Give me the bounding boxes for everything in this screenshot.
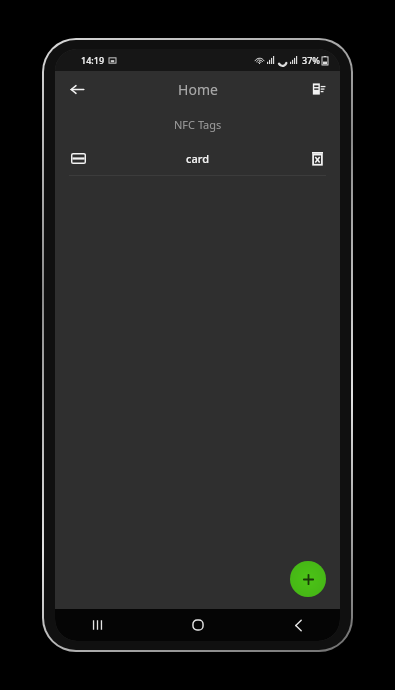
staticText: NFC Tags <box>174 117 222 132</box>
button[interactable]: Card tag <box>65 145 91 171</box>
button[interactable]: Card tag <box>55 141 340 175</box>
button[interactable]: Back <box>61 73 93 105</box>
button[interactable]: Home <box>178 609 218 641</box>
button[interactable]: History <box>304 74 334 104</box>
staticText: Home <box>178 80 218 99</box>
button[interactable]: Back <box>278 609 318 641</box>
staticText: 14:19 <box>81 54 105 66</box>
staticText: 37% <box>302 54 320 66</box>
button[interactable]: Delete <box>304 145 330 171</box>
staticText: card <box>186 151 209 166</box>
button[interactable]: Add tag <box>290 561 326 597</box>
button[interactable]: Recents <box>77 609 117 641</box>
